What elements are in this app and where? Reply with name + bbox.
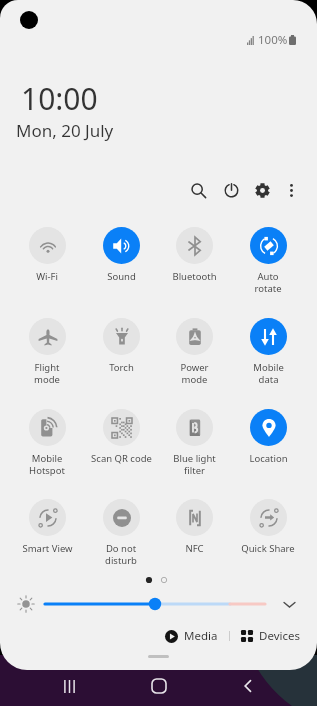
- staticText: Blue light filter: [173, 452, 216, 476]
- button[interactable]: Settings: [247, 175, 277, 205]
- button[interactable]: Wi-Fi: [10, 227, 84, 283]
- staticText: Sound: [107, 270, 136, 283]
- staticText: Location: [249, 452, 288, 465]
- staticText: Smart View: [22, 542, 73, 555]
- button[interactable]: Expand brightness: [276, 591, 302, 617]
- button[interactable]: Recents: [48, 668, 90, 704]
- button[interactable]: Sound: [84, 227, 158, 283]
- button[interactable]: Scan QR code: [84, 409, 158, 465]
- button[interactable]: NFC: [157, 499, 231, 555]
- staticText: NFC: [185, 542, 204, 555]
- button[interactable]: Smart View: [10, 499, 84, 555]
- button[interactable]: Back: [227, 668, 269, 704]
- staticText: Auto rotate: [254, 270, 282, 294]
- button[interactable]: Location: [231, 409, 305, 465]
- staticText: Power mode: [180, 361, 209, 385]
- button[interactable]: Mobile data: [231, 318, 305, 385]
- button[interactable]: Media: [161, 624, 222, 648]
- button[interactable]: Devices: [237, 624, 304, 648]
- staticText: Scan QR code: [91, 452, 152, 465]
- staticText: Mobile data: [253, 361, 284, 385]
- staticText: Mon, 20 July: [16, 119, 114, 142]
- button[interactable]: Search: [183, 175, 213, 205]
- staticText: 100%: [258, 32, 288, 48]
- staticText: Quick Share: [241, 542, 295, 555]
- button[interactable]: Power mode: [157, 318, 231, 385]
- staticText: Flight mode: [34, 361, 60, 385]
- button[interactable]: Torch: [84, 318, 158, 374]
- button[interactable]: Power: [216, 175, 246, 205]
- button[interactable]: More options: [276, 175, 306, 205]
- button[interactable]: Quick Share: [231, 499, 305, 555]
- staticText: Torch: [109, 361, 134, 374]
- staticText: Mobile Hotspot: [29, 452, 65, 476]
- button[interactable]: Mobile Hotspot: [10, 409, 84, 476]
- button[interactable]: Blue light filter: [157, 409, 231, 476]
- staticText: 10:00: [21, 78, 98, 119]
- button[interactable]: Auto rotate: [231, 227, 305, 294]
- button[interactable]: Bluetooth: [157, 227, 231, 283]
- staticText: Bluetooth: [172, 270, 217, 283]
- staticText: Wi-Fi: [36, 270, 58, 283]
- staticText: Do not disturb: [105, 542, 137, 566]
- staticText: Devices: [259, 628, 300, 644]
- button[interactable]: Home: [138, 668, 180, 704]
- button[interactable]: Flight mode: [10, 318, 84, 385]
- button[interactable]: Do not disturb: [84, 499, 158, 566]
- staticText: Media: [184, 628, 218, 644]
